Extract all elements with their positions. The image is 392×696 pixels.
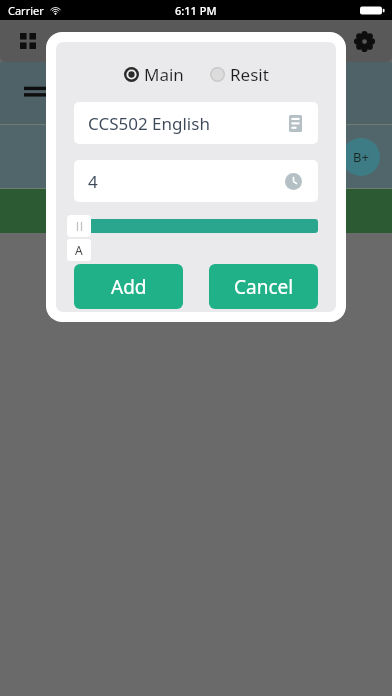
staticText: A [75,242,83,258]
button[interactable]: Add [74,264,183,309]
staticText: Add [111,274,147,300]
staticText: CCS502 English [88,112,210,135]
staticText: Carrier [8,3,44,18]
button[interactable]: Settings [347,24,381,58]
staticText: Cancel [234,274,294,300]
staticText: 4 [88,170,98,193]
button[interactable]: Main [122,61,186,88]
button[interactable]: Slider handle [67,215,91,237]
button[interactable]: CCS502 English [74,102,318,144]
button[interactable]: 4 [74,160,318,202]
staticText: Main [144,63,184,86]
button[interactable]: Cancel [209,264,318,309]
staticText: 6:11 PM [175,3,217,18]
button[interactable]: Resit [208,61,271,88]
button[interactable]: Grid view [11,24,45,58]
staticText: B+ [353,148,369,166]
button[interactable]: Slider [76,219,318,233]
staticText: Resit [230,63,269,86]
